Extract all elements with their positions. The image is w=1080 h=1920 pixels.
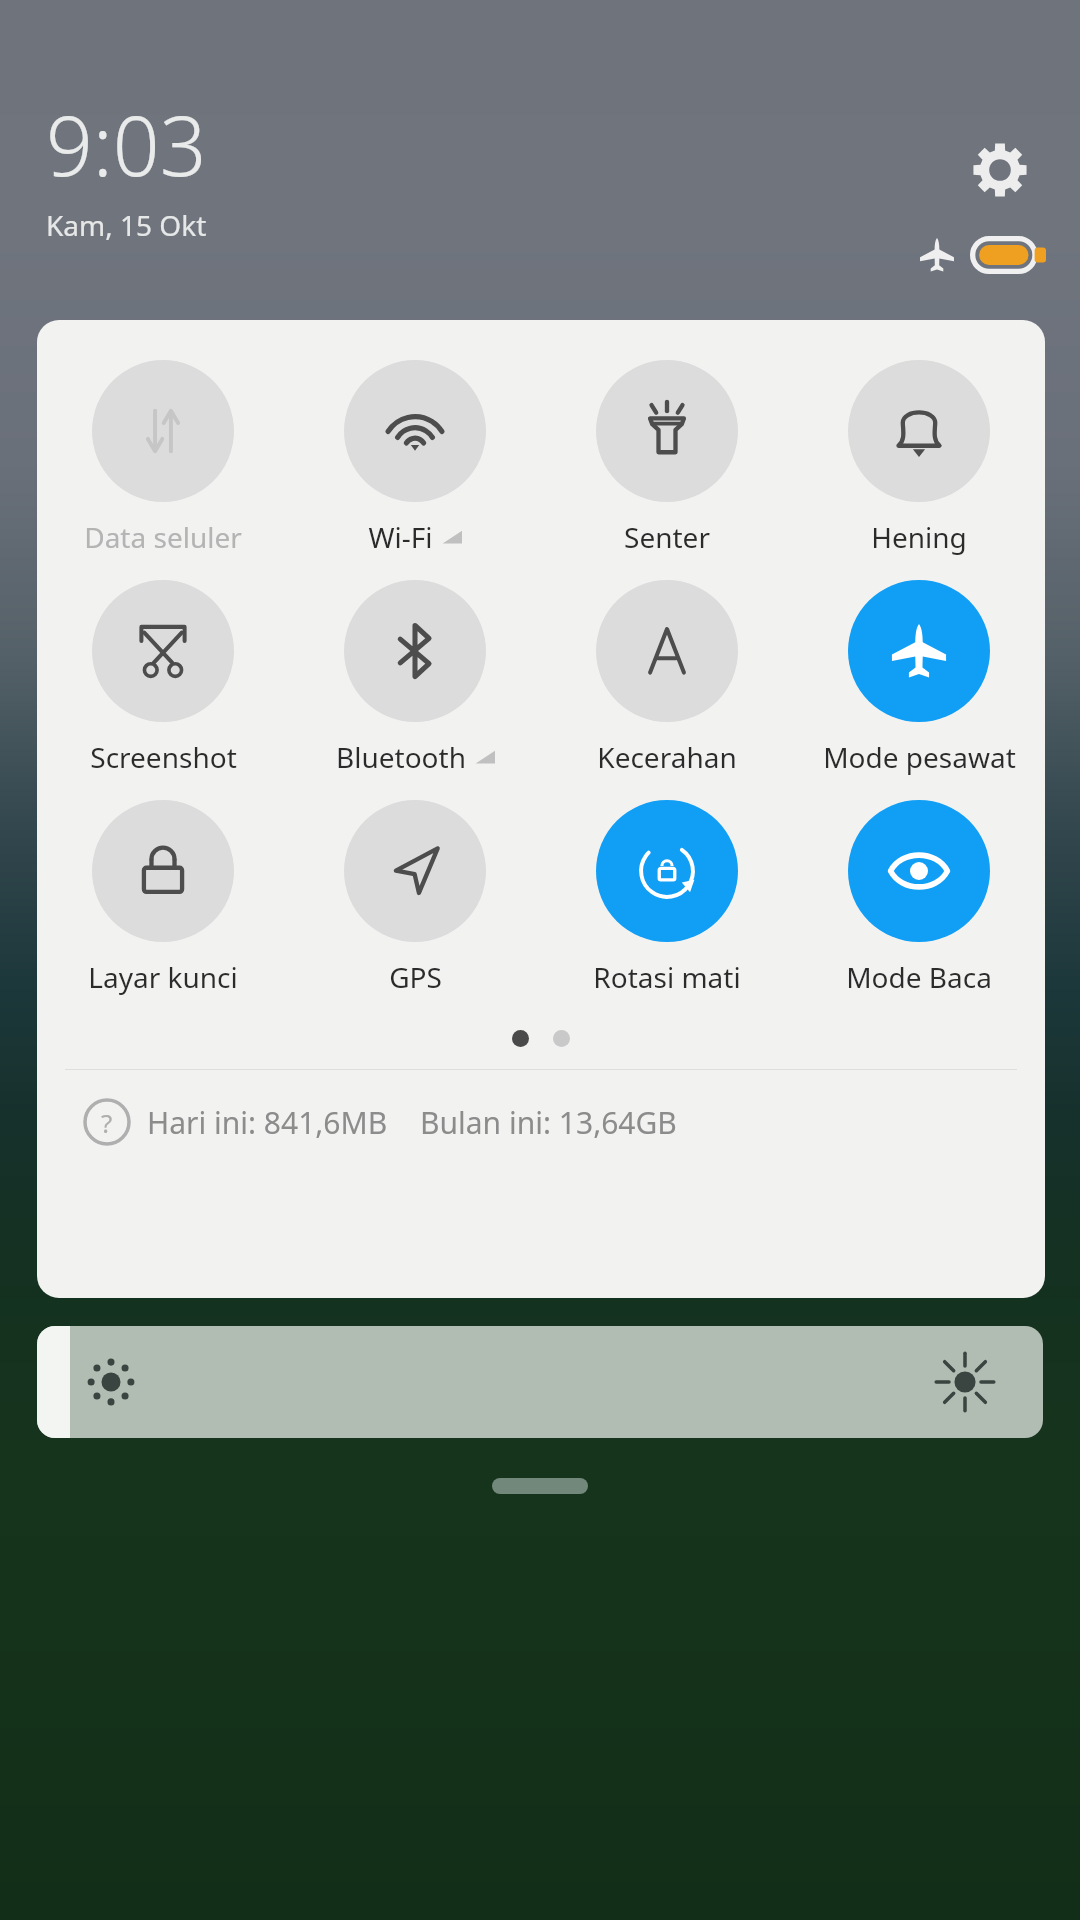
staticText: Data seluler: [84, 518, 242, 556]
button[interactable]: Settings: [966, 136, 1034, 204]
staticText: Mode Baca: [846, 958, 992, 996]
staticText: Bluetooth: [336, 738, 466, 776]
staticText: Kam, 15 Okt: [46, 206, 207, 244]
button[interactable]: Wi-Fi: [289, 360, 541, 556]
button[interactable]: Mode Baca: [793, 800, 1045, 996]
button[interactable]: Layar kunci: [37, 800, 289, 996]
staticText: Layar kunci: [88, 958, 238, 996]
staticText: Bulan ini: 13,64GB: [420, 1102, 677, 1143]
staticText: Screenshot: [90, 738, 237, 776]
button[interactable]: Bluetooth: [289, 580, 541, 776]
staticText: Kecerahan: [597, 738, 737, 776]
button[interactable]: Brightness: [37, 1326, 1043, 1438]
button[interactable]: Hening: [793, 360, 1045, 556]
staticText: Rotasi mati: [593, 958, 741, 996]
button[interactable]: Mode pesawat: [793, 580, 1045, 776]
button[interactable]: Senter: [541, 360, 793, 556]
staticText: 9:03: [46, 88, 207, 200]
button[interactable]: GPS: [289, 800, 541, 996]
button[interactable]: Rotasi mati: [541, 800, 793, 996]
staticText: ?: [101, 1105, 113, 1140]
staticText: GPS: [389, 958, 442, 996]
button[interactable]: Data seluler: [37, 360, 289, 556]
staticText: Wi-Fi: [368, 518, 433, 556]
staticText: Senter: [624, 518, 710, 556]
button[interactable]: Kecerahan: [541, 580, 793, 776]
staticText: Hening: [871, 518, 967, 556]
button[interactable]: Screenshot: [37, 580, 289, 776]
staticText: Hari ini: 841,6MB: [147, 1102, 388, 1143]
staticText: Mode pesawat: [823, 738, 1016, 776]
